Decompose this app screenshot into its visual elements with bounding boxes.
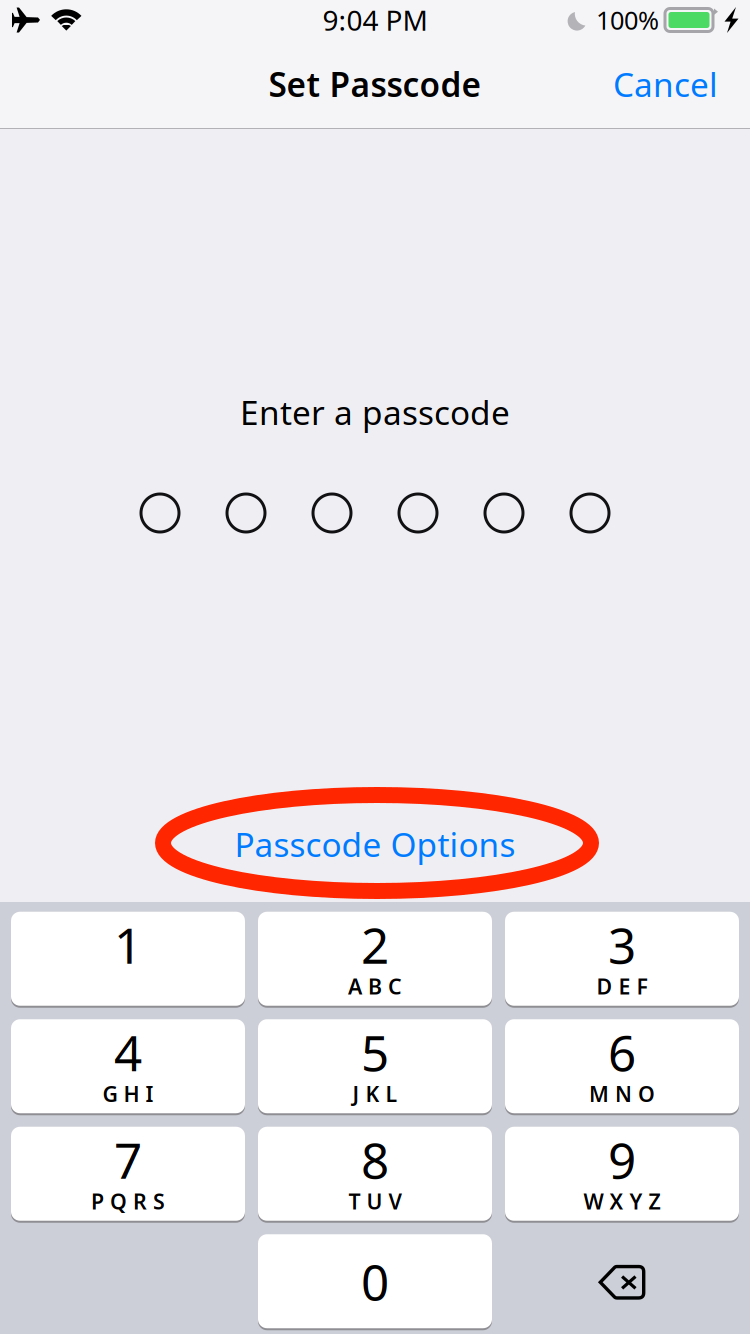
- staticText: 7: [114, 1127, 142, 1192]
- staticText: 6: [608, 1019, 636, 1085]
- staticText: 0: [361, 1248, 389, 1314]
- button[interactable]: Delete: [505, 1234, 739, 1330]
- staticText: 5: [361, 1019, 389, 1085]
- button[interactable]: 2: [258, 912, 492, 1008]
- staticText: 8: [361, 1127, 389, 1192]
- button[interactable]: 6: [505, 1019, 739, 1115]
- staticText: Enter a passcode: [240, 390, 510, 434]
- staticText: 2: [361, 912, 389, 977]
- staticText: D E F: [596, 972, 647, 1000]
- staticText: T U V: [348, 1187, 401, 1215]
- button[interactable]: 8: [258, 1127, 492, 1223]
- staticText: 100%: [596, 3, 659, 37]
- staticText: 9:04 PM: [322, 1, 427, 39]
- staticText: 3: [608, 912, 636, 977]
- button[interactable]: 7: [11, 1127, 245, 1223]
- button[interactable]: 1: [11, 912, 245, 1008]
- staticText: A B C: [348, 972, 402, 1000]
- staticText: 4: [114, 1019, 142, 1085]
- button[interactable]: Cancel: [599, 48, 732, 120]
- staticText: J K L: [352, 1080, 397, 1108]
- button[interactable]: 0: [258, 1234, 492, 1330]
- staticText: Set Passcode: [268, 62, 481, 106]
- button[interactable]: Passcode Options: [145, 774, 605, 902]
- button[interactable]: 9: [505, 1127, 739, 1223]
- staticText: G H I: [102, 1080, 153, 1108]
- staticText: P Q R S: [91, 1187, 165, 1215]
- staticText: M N O: [589, 1080, 655, 1108]
- button[interactable]: 4: [11, 1019, 245, 1115]
- staticText: 9: [608, 1127, 636, 1192]
- staticText: W X Y Z: [583, 1187, 660, 1215]
- staticText: 1: [114, 912, 142, 977]
- staticText: Passcode Options: [234, 822, 515, 866]
- button[interactable]: 3: [505, 912, 739, 1008]
- button[interactable]: 5: [258, 1019, 492, 1115]
- staticText: Cancel: [613, 62, 718, 106]
